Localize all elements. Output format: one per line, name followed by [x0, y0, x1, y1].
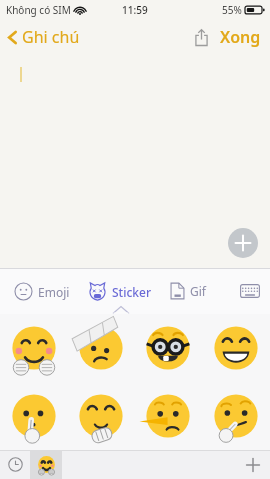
- staticText: Emoji: [38, 284, 70, 300]
- staticText: 55%: [222, 3, 242, 17]
- button[interactable]: Xong: [216, 21, 270, 53]
- button[interactable]: Face with head bandage: [67, 314, 134, 382]
- button[interactable]: Hugging face: [0, 314, 67, 382]
- button[interactable]: Face with hand over mouth: [67, 382, 134, 450]
- button[interactable]: Add attachment: [228, 228, 258, 258]
- staticText: 11:59: [122, 3, 148, 17]
- staticText: Xong: [220, 26, 261, 48]
- staticText: Gif: [190, 283, 206, 299]
- button[interactable]: Gif: [168, 276, 208, 306]
- button[interactable]: Ghi chú: [0, 21, 90, 53]
- button[interactable]: Keyboard: [230, 278, 270, 304]
- button[interactable]: Emoji: [12, 276, 72, 307]
- button[interactable]: Add sticker pack: [236, 450, 270, 479]
- staticText: Không có SIM: [6, 3, 71, 17]
- button[interactable]: Shushing face: [0, 382, 67, 450]
- button[interactable]: Recently used: [0, 450, 30, 479]
- button[interactable]: Nerd face: [134, 314, 202, 382]
- staticText: Sticker: [112, 284, 152, 300]
- button[interactable]: Share: [187, 25, 216, 50]
- button[interactable]: Thinking face: [202, 382, 270, 450]
- button[interactable]: Sticker: [86, 276, 154, 307]
- button[interactable]: Lying face: [134, 382, 202, 450]
- button[interactable]: Smileys sticker pack: [30, 450, 62, 479]
- staticText: Ghi chú: [22, 26, 80, 48]
- button[interactable]: Grinning face: [202, 314, 270, 382]
